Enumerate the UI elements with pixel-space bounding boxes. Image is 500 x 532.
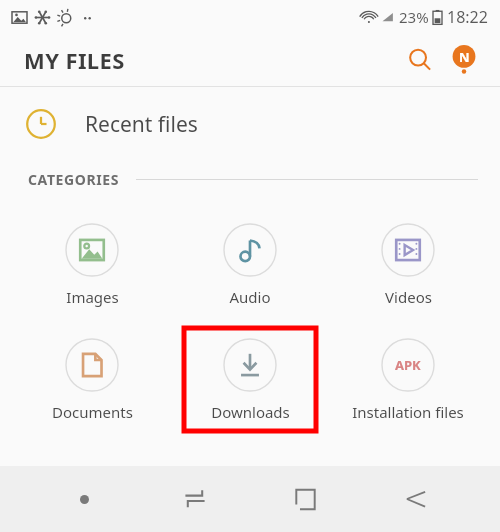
button[interactable]: Menu <box>58 473 110 525</box>
staticText: MY FILES <box>24 45 125 75</box>
button[interactable]: APK <box>342 328 474 431</box>
button[interactable]: Recent apps <box>169 473 221 525</box>
staticText: Recent files <box>85 110 198 139</box>
staticText: CATEGORIES <box>28 170 120 189</box>
button[interactable]: Home <box>279 473 331 525</box>
button[interactable]: Search <box>398 38 442 82</box>
button[interactable]: Downloads <box>184 328 316 431</box>
staticText: 18:22 <box>447 6 488 28</box>
staticText: Downloads <box>211 402 290 422</box>
button[interactable]: Documents <box>26 328 158 431</box>
staticText: Installation files <box>352 402 464 422</box>
button[interactable]: Recent files <box>0 87 500 161</box>
staticText: Documents <box>52 402 133 422</box>
button[interactable]: Account <box>442 38 486 82</box>
staticText: Images <box>66 287 119 307</box>
button[interactable]: Videos <box>342 213 474 316</box>
staticText: Videos <box>385 287 432 307</box>
button[interactable]: Audio <box>184 213 316 316</box>
staticText: N <box>459 48 470 66</box>
button[interactable]: Images <box>26 213 158 316</box>
staticText: Audio <box>229 287 271 307</box>
staticText: 23% <box>399 7 429 27</box>
button[interactable]: Back <box>390 473 442 525</box>
staticText: APK <box>395 356 421 374</box>
